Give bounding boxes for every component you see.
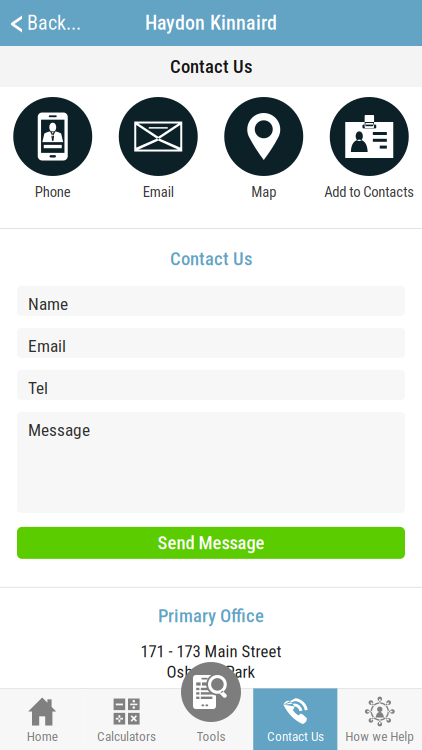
- button[interactable]: Back...: [0, 0, 91, 46]
- staticText: Email: [143, 183, 174, 201]
- button[interactable]: Tools: [181, 662, 241, 722]
- button[interactable]: Tel: [17, 370, 405, 400]
- button[interactable]: Contact Us: [253, 688, 338, 750]
- staticText: Contact Us: [170, 56, 252, 77]
- staticText: Primary Office: [158, 605, 264, 627]
- button[interactable]: Email: [17, 328, 405, 358]
- staticText: Add to Contacts: [324, 183, 414, 201]
- staticText: Home: [27, 729, 58, 744]
- staticText: Contact Us: [170, 248, 252, 270]
- button[interactable]: How we Help: [338, 688, 422, 750]
- staticText: Back...: [27, 11, 81, 35]
- staticText: How we Help: [345, 729, 414, 744]
- staticText: 171 - 173 Main Street: [140, 642, 281, 661]
- button[interactable]: Send Message: [17, 525, 405, 559]
- staticText: Tools: [196, 729, 225, 744]
- button[interactable]: Home: [0, 688, 84, 750]
- button[interactable]: Name: [17, 286, 405, 316]
- staticText: Email: [28, 336, 66, 356]
- staticText: Contact Us: [267, 729, 324, 744]
- button[interactable]: Calculators: [84, 688, 169, 750]
- button[interactable]: Map: [211, 97, 316, 199]
- staticText: Phone: [35, 183, 71, 201]
- staticText: Name: [28, 294, 68, 314]
- staticText: Message: [28, 420, 90, 440]
- staticText: Map: [251, 183, 276, 201]
- button[interactable]: Message: [17, 412, 405, 513]
- button[interactable]: Email: [105, 97, 211, 199]
- staticText: Osborne Park: [166, 662, 255, 682]
- staticText: Calculators: [97, 729, 156, 744]
- staticText: Haydon Kinnaird: [145, 11, 277, 35]
- button[interactable]: Tools: [169, 688, 253, 750]
- staticText: Send Message: [157, 532, 264, 554]
- staticText: Tel: [28, 378, 48, 398]
- button[interactable]: Add to Contacts: [316, 97, 422, 199]
- button[interactable]: Phone: [0, 97, 105, 199]
